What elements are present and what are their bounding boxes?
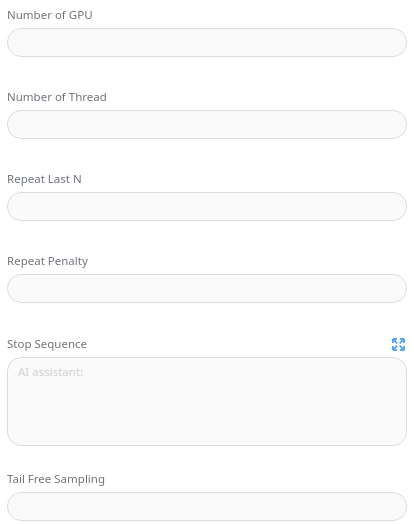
staticText: AI assistant:: [18, 364, 84, 380]
button[interactable]: [7, 192, 407, 221]
button[interactable]: Collapse stop sequence editor: [389, 335, 407, 353]
staticText: Repeat Penalty: [7, 253, 88, 269]
staticText: Tail Free Sampling: [7, 471, 106, 487]
staticText: Number of GPU: [7, 7, 93, 23]
staticText: Stop Sequence: [7, 336, 88, 352]
staticText: Number of Thread: [7, 89, 107, 105]
staticText: Repeat Last N: [7, 171, 82, 187]
button[interactable]: AI assistant:: [7, 357, 407, 446]
button[interactable]: [7, 110, 407, 139]
button[interactable]: [7, 492, 407, 521]
button[interactable]: [7, 28, 407, 57]
button[interactable]: [7, 274, 407, 303]
